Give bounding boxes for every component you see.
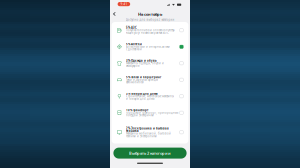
staticText: Доступно для выбора 2 категории (125, 18, 174, 21)
staticText: 5% Такси и каршеринг (126, 75, 161, 79)
staticText: 3% Товары для дома (126, 92, 158, 95)
staticText: и товары для дома (126, 97, 154, 100)
button[interactable]: 5% Аптеки (112, 38, 188, 55)
button[interactable]: 5% АЗС (112, 22, 188, 38)
button[interactable]: 5% Такси и каршеринг (112, 71, 188, 88)
button[interactable]: Выбрать 2 категории (113, 148, 187, 159)
staticText: Выбрать 2 категории (129, 150, 171, 156)
staticText: техники и электроники (126, 134, 157, 138)
staticText: Строительные, мебельные магазины (126, 94, 174, 98)
staticText: аксессуаров (126, 64, 140, 67)
staticText: с доставкой (126, 47, 142, 51)
staticText: 10% Транспорт (126, 108, 148, 112)
staticText: автомобилей (126, 80, 144, 84)
button[interactable]: 3% Товары для дома (112, 88, 188, 104)
staticText: 3% Одежда и обувь (126, 59, 157, 62)
button[interactable]: 3% Одежда и обувь (112, 55, 188, 71)
staticText: Городской транспорт, пригородные (126, 111, 178, 114)
staticText: Аптечные сети и интернет-аптеки (126, 45, 170, 48)
staticText: ющих услуг на автозаправках АЗС (126, 31, 169, 34)
button[interactable]: 2% Электроника и бытовая (112, 121, 188, 143)
button[interactable]: 10% Транспорт (112, 104, 188, 121)
staticText: 2% Электроника и бытовая (126, 127, 169, 130)
staticText: техника (126, 129, 139, 133)
staticText: На сентябрь (138, 12, 162, 17)
staticText: 5% Аптеки (126, 42, 142, 46)
staticText: 5% АЗС (126, 26, 137, 29)
staticText: Такси и сервисы аренды (126, 78, 158, 81)
staticText: Магазины мобильной, бытовой (126, 132, 171, 135)
staticText: Магазины одежды, обуви и (126, 61, 164, 65)
staticText: 9:41 (120, 2, 127, 6)
staticText: Покупка топлива и оплата сопутству- (126, 28, 175, 32)
button[interactable]: Back (110, 9, 120, 20)
staticText: поезда и электрички (126, 113, 154, 117)
